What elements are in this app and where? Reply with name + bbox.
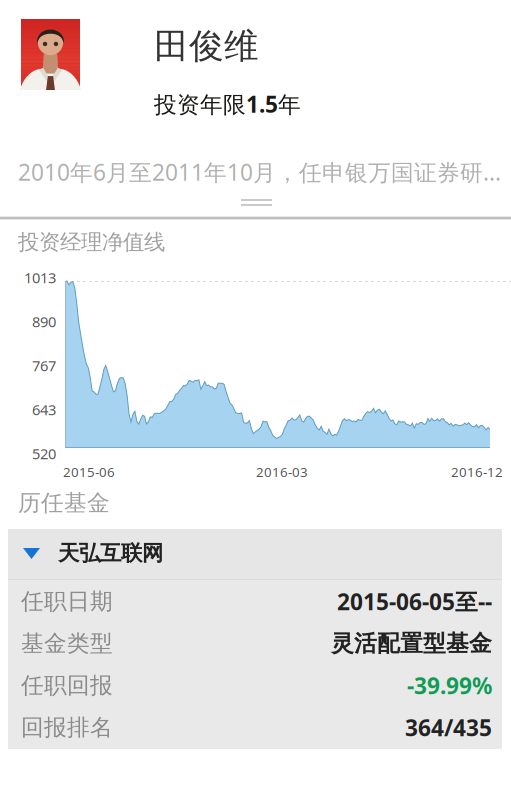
staticText: 2010年6月至2011年10月，任申银万国证券研...: [18, 157, 501, 187]
staticText: 1013: [24, 268, 56, 287]
staticText: 520: [32, 444, 56, 463]
staticText: 643: [32, 400, 56, 419]
staticText: 任职日期: [21, 588, 113, 615]
staticText: 回报排名: [21, 714, 113, 741]
staticText: 364/435: [405, 712, 492, 742]
staticText: 任职回报: [21, 672, 113, 699]
button[interactable]: 基金类型: [8, 622, 502, 664]
staticText: 投资经理净值线: [18, 229, 165, 255]
staticText: 2016-03: [256, 463, 308, 481]
staticText: -39.99%: [407, 670, 492, 700]
staticText: 历任基金: [18, 489, 110, 517]
staticText: 2015-06-05至--: [337, 586, 492, 616]
staticText: 890: [32, 312, 56, 331]
staticText: 天弘互联网: [58, 540, 163, 566]
staticText: 田俊维: [154, 25, 259, 68]
staticText: 基金类型: [21, 630, 113, 657]
button[interactable]: 回报排名: [8, 706, 502, 748]
button[interactable]: 天弘互联网: [8, 529, 502, 579]
staticText: 2016-12: [451, 463, 503, 481]
staticText: 灵活配置型基金: [331, 630, 492, 657]
button[interactable]: 任职回报: [8, 664, 502, 706]
button[interactable]: 任职日期: [8, 580, 502, 622]
staticText: 投资年限1.5年: [154, 89, 301, 119]
staticText: 767: [32, 356, 56, 375]
staticText: 2015-06: [63, 463, 115, 481]
